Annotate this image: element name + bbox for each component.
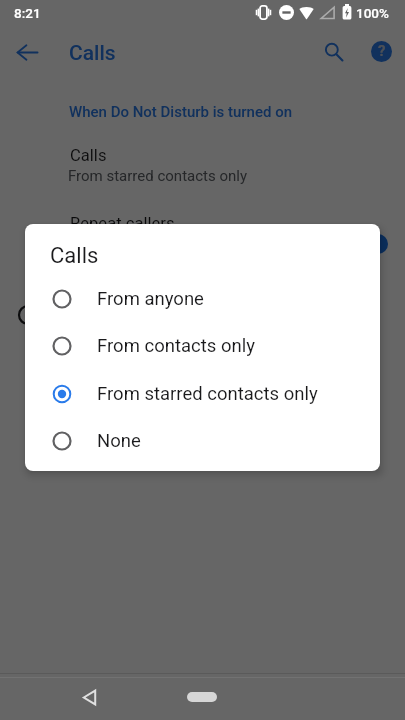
button[interactable]: From starred contacts only bbox=[25, 370, 380, 417]
button[interactable]: From contacts only bbox=[25, 322, 380, 369]
button[interactable]: Search bbox=[316, 34, 352, 70]
button[interactable]: None bbox=[25, 417, 380, 464]
button[interactable]: Back bbox=[70, 678, 109, 717]
staticText: None bbox=[97, 430, 141, 452]
staticText: ? bbox=[378, 42, 386, 60]
button[interactable]: Back bbox=[11, 36, 43, 68]
staticText: 100% bbox=[356, 5, 389, 21]
staticText: From anyone bbox=[97, 288, 204, 310]
staticText: 8:21 bbox=[14, 5, 41, 21]
staticText: From contacts only bbox=[97, 335, 255, 357]
staticText: Calls bbox=[69, 41, 116, 66]
button[interactable]: Help bbox=[363, 33, 399, 69]
button[interactable]: From anyone bbox=[25, 275, 380, 322]
staticText: When Do Not Disturb is turned on bbox=[69, 103, 293, 121]
staticText: Repeat callers bbox=[70, 214, 175, 233]
button[interactable]: Home bbox=[187, 692, 217, 702]
staticText: From starred contacts only bbox=[68, 167, 247, 185]
staticText: Calls bbox=[70, 146, 107, 165]
staticText: Calls bbox=[50, 243, 99, 269]
staticText: From starred contacts only bbox=[97, 383, 318, 405]
